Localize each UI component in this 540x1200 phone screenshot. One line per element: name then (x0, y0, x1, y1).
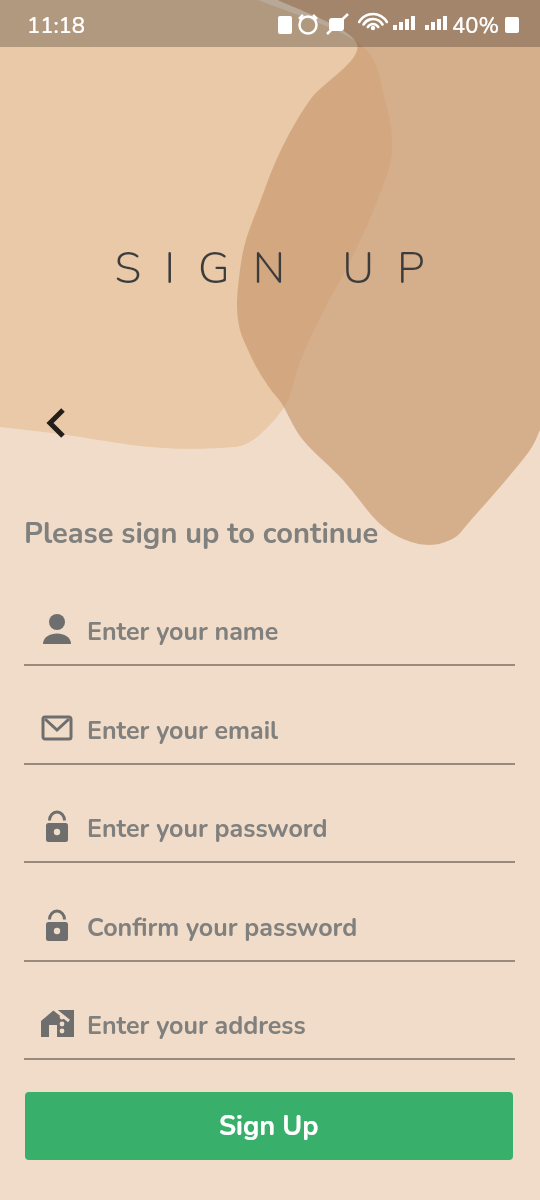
staticText: Enter your name (87, 615, 279, 649)
button[interactable]: Enter your password (24, 798, 515, 876)
staticText: Enter your address (87, 1009, 306, 1043)
button[interactable]: Enter your name (24, 601, 515, 679)
button[interactable]: Back (26, 400, 74, 448)
staticText: Sign Up (219, 1108, 319, 1145)
button[interactable]: Enter your address (24, 995, 515, 1073)
staticText: SIGN UP (11, 239, 540, 299)
staticText: Please sign up to continue (24, 514, 379, 554)
staticText: 40% (452, 11, 499, 41)
staticText: Enter your email (87, 714, 279, 748)
button[interactable]: Enter your email (24, 700, 515, 778)
staticText: Confirm your password (87, 911, 358, 945)
staticText: 11:18 (27, 11, 85, 41)
button[interactable]: Sign Up (25, 1092, 513, 1160)
button[interactable]: Confirm your password (24, 897, 515, 975)
staticText: Enter your password (87, 812, 328, 846)
